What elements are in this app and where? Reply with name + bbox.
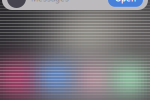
button[interactable]: Messages: [2, 0, 148, 10]
staticText: Messages: [31, 0, 69, 4]
staticText: Open: [115, 0, 136, 4]
